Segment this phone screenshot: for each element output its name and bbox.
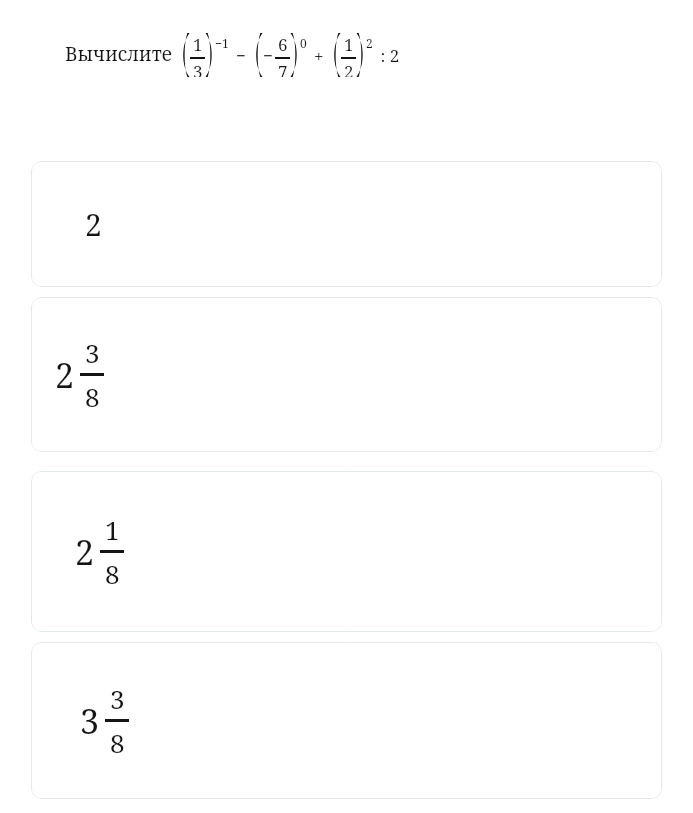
button[interactable]: 2: [31, 161, 662, 287]
staticText: : 2: [376, 44, 400, 67]
staticText: 8: [105, 556, 120, 591]
staticText: 2: [55, 352, 75, 398]
staticText: 6: [278, 33, 288, 56]
staticText: 3: [80, 698, 100, 744]
staticText: 1: [344, 33, 354, 56]
staticText: +: [314, 44, 324, 67]
button[interactable]: 2: [31, 471, 662, 632]
staticText: 8: [85, 379, 100, 414]
staticText: 1: [105, 512, 120, 547]
staticText: 3: [110, 681, 125, 716]
staticText: −1: [215, 35, 229, 51]
staticText: −: [263, 44, 273, 67]
button[interactable]: 2: [31, 297, 662, 452]
button[interactable]: 3: [31, 642, 662, 799]
staticText: 2: [75, 529, 95, 575]
staticText: 3: [85, 335, 100, 370]
staticText: −: [236, 44, 246, 67]
staticText: 3: [193, 60, 203, 77]
staticText: 7: [278, 60, 288, 77]
staticText: 2: [366, 35, 373, 51]
staticText: 0: [300, 35, 307, 51]
staticText: Вычислите: [65, 41, 172, 67]
staticText: 8: [110, 725, 125, 760]
staticText: 2: [344, 60, 354, 77]
staticText: 2: [85, 204, 102, 245]
staticText: 1: [193, 33, 203, 56]
